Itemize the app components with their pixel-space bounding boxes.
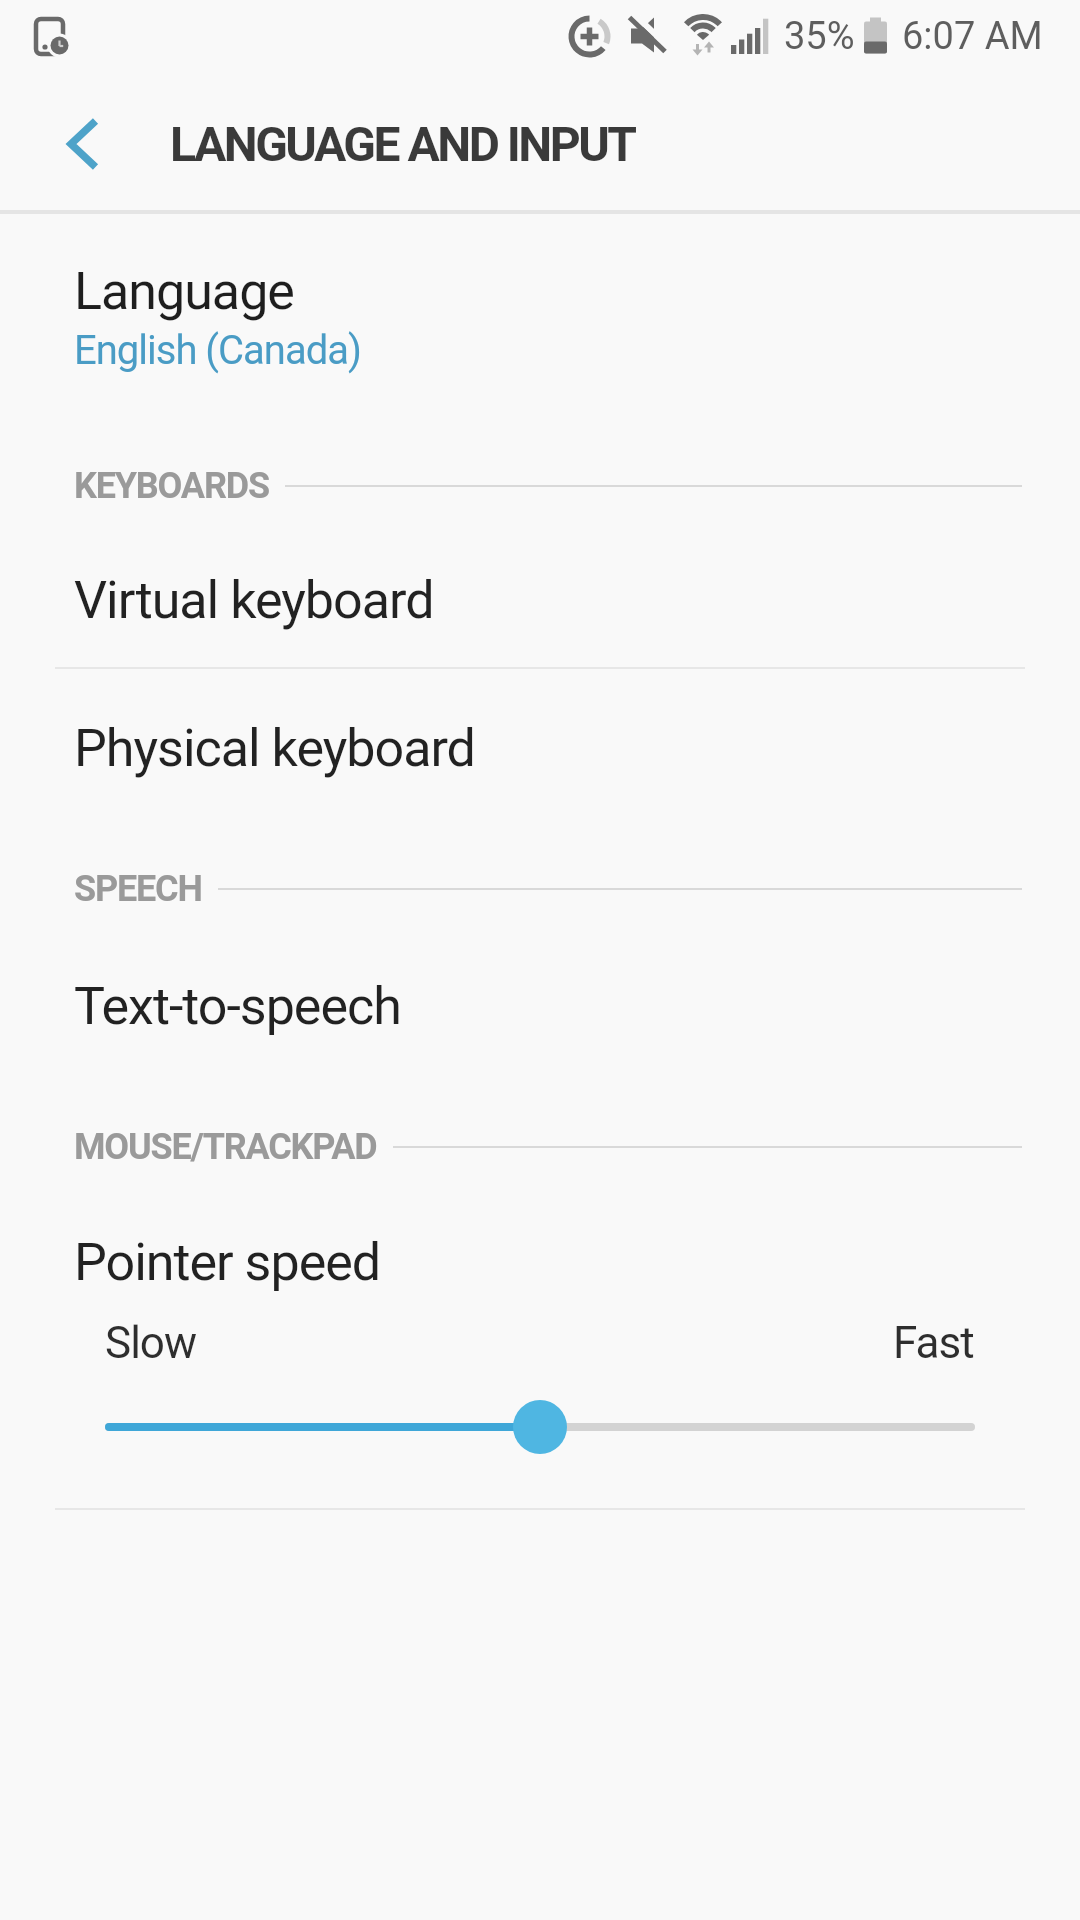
staticText: Virtual keyboard xyxy=(74,570,434,631)
staticText: LANGUAGE AND INPUT xyxy=(170,116,635,172)
staticText: Text-to-speech xyxy=(74,976,401,1037)
staticText: Language xyxy=(74,261,294,322)
staticText: Pointer speed xyxy=(74,1232,381,1293)
staticText: Fast xyxy=(893,1317,974,1369)
staticText: KEYBOARDS xyxy=(74,465,269,507)
staticText: 35% xyxy=(784,14,855,59)
staticText: English (Canada) xyxy=(74,327,361,374)
staticText: 6:07 AM xyxy=(902,14,1043,59)
staticText: Physical keyboard xyxy=(74,718,475,779)
staticText: MOUSE/TRACKPAD xyxy=(74,1126,377,1168)
staticText: SPEECH xyxy=(74,868,202,910)
staticText: Slow xyxy=(105,1317,196,1369)
